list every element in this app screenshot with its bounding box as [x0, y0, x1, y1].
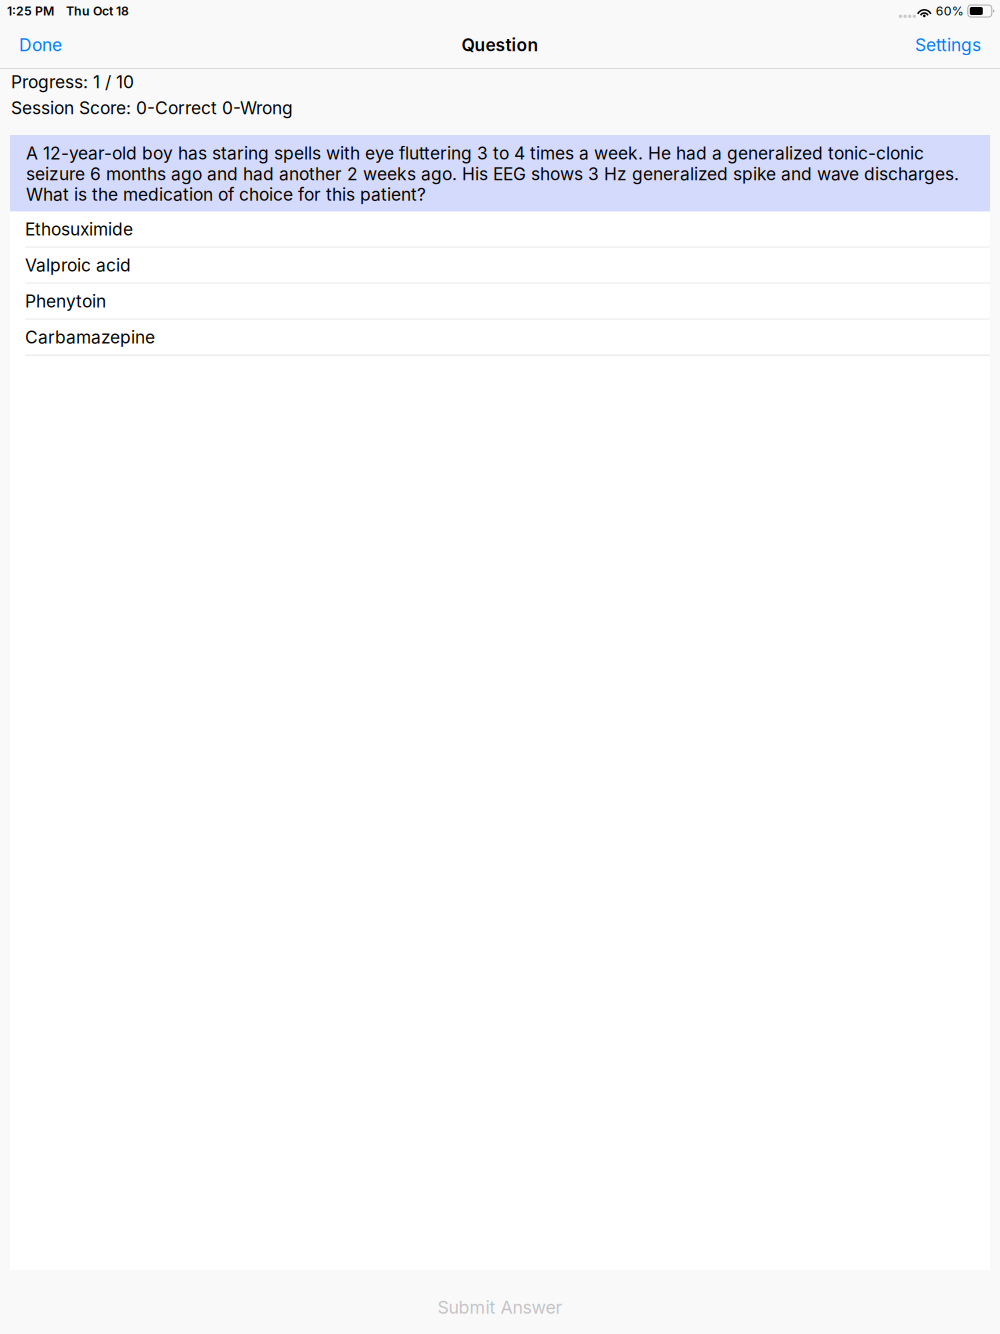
staticText: A 12-year-old boy has staring spells wit…	[26, 143, 959, 205]
staticText: 60%	[936, 4, 964, 18]
staticText: Carbamazepine	[25, 327, 155, 348]
staticText: 1:25 PM	[7, 4, 54, 18]
staticText: Done	[19, 34, 62, 55]
staticText: Phenytoin	[25, 291, 106, 312]
staticText: Submit Answer	[437, 1296, 562, 1318]
staticText: Thu Oct 18	[66, 4, 129, 18]
button[interactable]: Valproic acid	[10, 248, 990, 284]
staticText: Settings	[915, 34, 981, 55]
button[interactable]: Carbamazepine	[10, 320, 990, 356]
button[interactable]: Settings	[907, 22, 989, 67]
button[interactable]: Phenytoin	[10, 284, 990, 320]
button[interactable]: Ethosuximide	[10, 212, 990, 248]
staticText: Ethosuximide	[25, 219, 133, 240]
staticText: Question	[461, 34, 538, 55]
button[interactable]: Done	[11, 22, 70, 67]
staticText: Session Score: 0-Correct 0-Wrong	[11, 97, 293, 118]
button[interactable]: Submit Answer	[0, 1262, 1000, 1334]
staticText: Progress: 1 / 10	[11, 71, 134, 92]
staticText: Valproic acid	[25, 255, 131, 276]
